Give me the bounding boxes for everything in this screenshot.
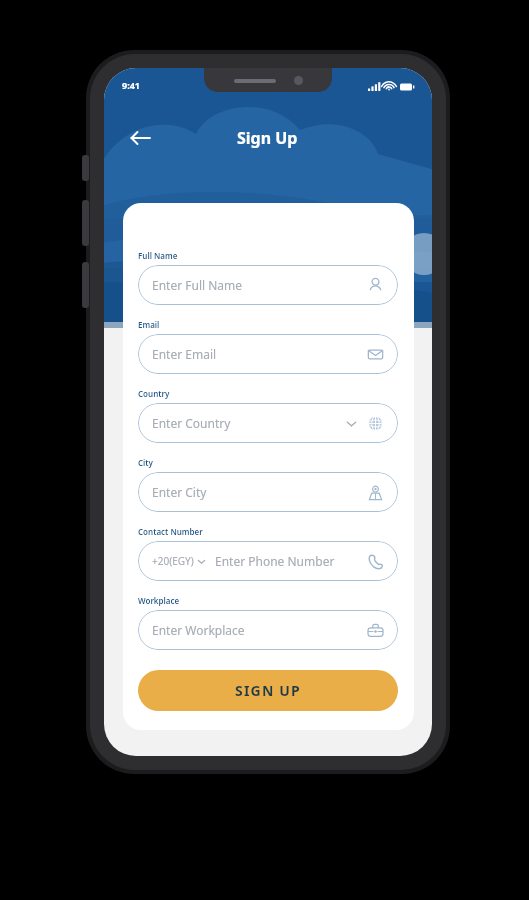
staticText: Enter Email [152,346,217,362]
staticText: Full Name [138,250,178,261]
button[interactable]: Enter Workplace [138,610,398,650]
staticText: Enter Workplace [152,622,245,638]
staticText: Enter Phone Number [215,553,335,569]
button[interactable]: +20(EGY) [138,541,398,581]
staticText: 9:41 [122,79,140,91]
staticText: City [138,457,153,468]
button[interactable]: Enter Country [138,403,398,443]
staticText: Email [138,319,160,330]
staticText: Country [138,388,170,399]
button[interactable]: Enter Full Name [138,265,398,305]
staticText: Enter Full Name [152,277,243,293]
button[interactable]: Enter City [138,472,398,512]
staticText: Workplace [138,595,180,606]
staticText: Contact Number [138,526,203,537]
staticText: +20(EGY) [152,554,194,568]
staticText: Sign Up [237,127,298,149]
staticText: Enter Country [152,415,231,431]
button[interactable]: Enter Email [138,334,398,374]
button[interactable]: SIGN UP [138,670,398,711]
button[interactable]: Back [126,124,154,152]
staticText: SIGN UP [235,681,301,700]
staticText: Enter City [152,484,207,500]
